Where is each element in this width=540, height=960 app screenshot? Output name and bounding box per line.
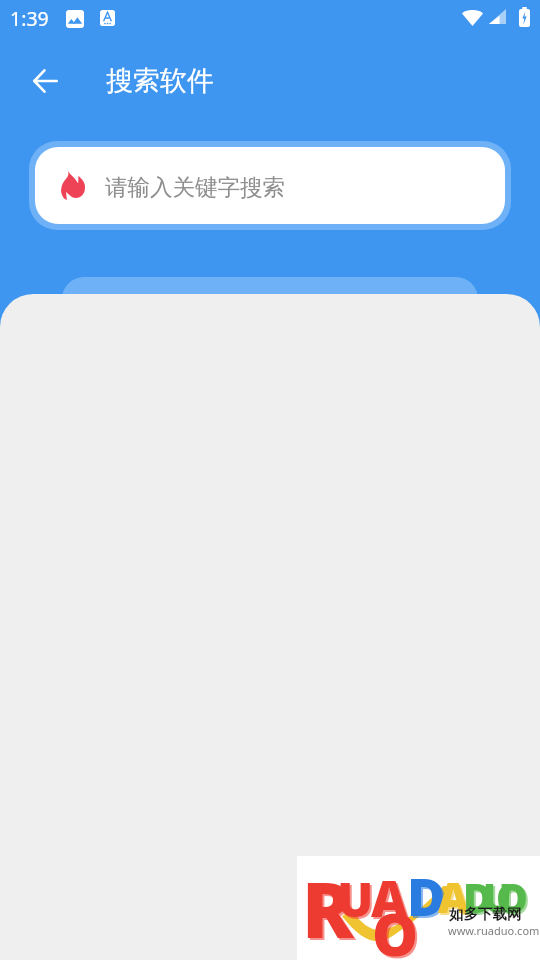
button[interactable]: 请输入关键字搜索 bbox=[29, 141, 511, 230]
staticText: U bbox=[485, 873, 514, 925]
staticText: 如多下载网 bbox=[449, 905, 522, 923]
staticText: 请输入关键字搜索 bbox=[105, 173, 285, 201]
staticText: A bbox=[373, 866, 410, 934]
staticText: A bbox=[371, 864, 408, 932]
staticText: D bbox=[465, 872, 495, 926]
staticText: A bbox=[438, 868, 469, 925]
staticText: U bbox=[483, 871, 512, 923]
staticText: D bbox=[409, 862, 448, 933]
staticText: www.ruaduo.com bbox=[448, 923, 540, 938]
staticText: 1:39 bbox=[10, 5, 49, 32]
staticText: O bbox=[496, 870, 528, 924]
staticText: R bbox=[304, 859, 356, 960]
staticText: D bbox=[463, 870, 493, 924]
staticText: U bbox=[339, 868, 376, 933]
staticText: O bbox=[498, 872, 530, 926]
staticText: R bbox=[302, 857, 354, 960]
staticText: 搜索软件 bbox=[106, 64, 214, 98]
staticText: D bbox=[407, 860, 446, 931]
staticText: O bbox=[372, 894, 419, 960]
staticText: U bbox=[337, 866, 374, 931]
button[interactable]: Back bbox=[14, 58, 76, 104]
staticText: A bbox=[440, 870, 471, 927]
staticText: O bbox=[374, 896, 421, 960]
